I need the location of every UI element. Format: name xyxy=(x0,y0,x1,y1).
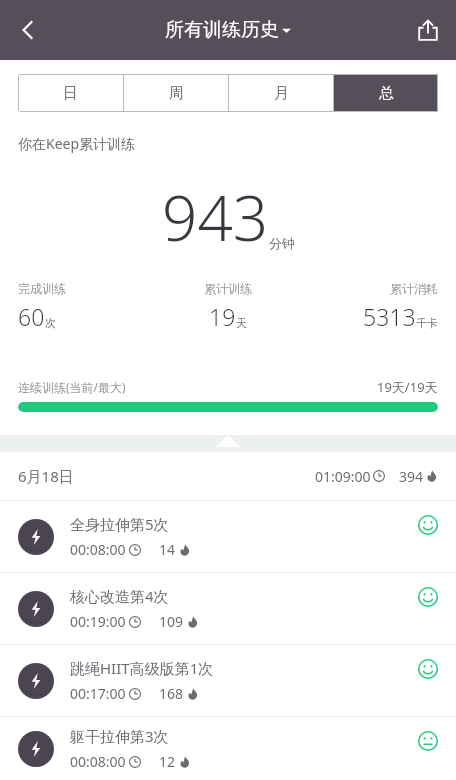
staticText: 5313 xyxy=(363,301,416,332)
button[interactable]: 月 xyxy=(229,74,333,112)
staticText: 分钟 xyxy=(269,235,295,251)
staticText: 全身拉伸第5次 xyxy=(70,514,169,534)
staticText: 累计训练 xyxy=(204,281,252,296)
staticText: 00:19:00 xyxy=(70,612,126,631)
staticText: 跳绳HIIT高级版第1次 xyxy=(70,658,214,678)
staticText: 00:17:00 xyxy=(70,684,126,703)
staticText: 19天/19天 xyxy=(377,378,438,396)
staticText: 连续训练(当前/最大) xyxy=(18,379,126,395)
staticText: 千卡 xyxy=(416,316,438,330)
button[interactable]: 所有训练历史 xyxy=(165,18,291,42)
button[interactable]: 日 xyxy=(18,74,123,112)
staticText: 14 xyxy=(159,540,176,559)
staticText: 109 xyxy=(159,612,184,631)
staticText: 日 xyxy=(63,84,78,103)
staticText: 累计消耗 xyxy=(390,281,438,296)
staticText: 60 xyxy=(18,301,45,332)
staticText: 394 xyxy=(399,467,424,486)
button[interactable]: 跳绳HIIT高级版第1次 xyxy=(0,645,456,716)
button[interactable]: Share xyxy=(400,2,456,58)
staticText: 周 xyxy=(169,84,184,103)
button[interactable]: Back xyxy=(0,2,56,58)
staticText: 943 xyxy=(162,175,269,259)
staticText: 次 xyxy=(45,316,56,330)
staticText: 月 xyxy=(274,84,289,103)
staticText: 躯干拉伸第3次 xyxy=(70,726,169,746)
button[interactable]: 周 xyxy=(124,74,228,112)
button[interactable]: 核心改造第4次 xyxy=(0,573,456,644)
staticText: 12 xyxy=(159,752,176,771)
staticText: 天 xyxy=(236,316,247,330)
staticText: 总 xyxy=(379,84,394,103)
staticText: 完成训练 xyxy=(18,281,66,296)
staticText: 6月18日 xyxy=(18,466,74,486)
button[interactable]: 总 xyxy=(334,74,438,112)
button[interactable]: 躯干拉伸第3次 xyxy=(0,717,456,780)
staticText: 你在Keep累计训练 xyxy=(18,134,136,153)
staticText: 01:09:00 xyxy=(315,467,371,486)
staticText: 核心改造第4次 xyxy=(70,586,169,606)
staticText: 00:08:00 xyxy=(70,752,126,771)
staticText: 168 xyxy=(159,684,184,703)
button[interactable]: 全身拉伸第5次 xyxy=(0,501,456,572)
staticText: 所有训练历史 xyxy=(165,18,279,42)
staticText: 00:08:00 xyxy=(70,540,126,559)
staticText: 19 xyxy=(209,301,236,332)
